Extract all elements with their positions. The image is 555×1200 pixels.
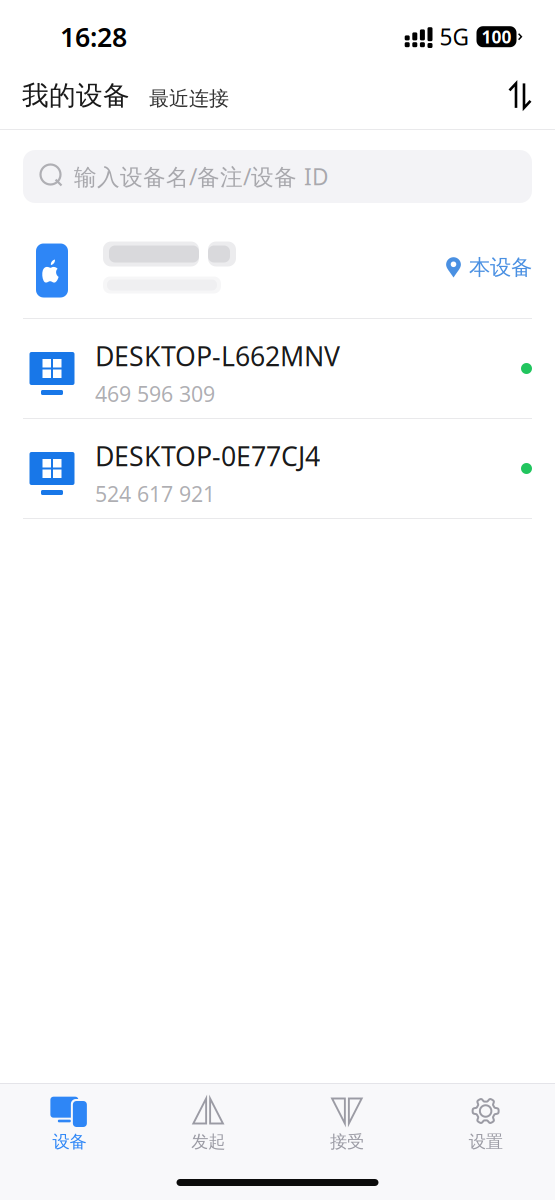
- staticText: 设备: [52, 1131, 86, 1152]
- staticText: 16:28: [60, 19, 127, 54]
- staticText: 100: [481, 25, 511, 48]
- button[interactable]: 发起: [139, 1084, 278, 1158]
- staticText: 我的设备: [22, 79, 130, 112]
- button[interactable]: 接受: [277, 1084, 416, 1158]
- staticText: 最近连接: [149, 86, 229, 111]
- staticText: 发起: [191, 1131, 225, 1152]
- button[interactable]: 输入设备名/备注/设备 ID: [23, 150, 532, 203]
- staticText: 本设备: [469, 254, 532, 281]
- staticText: DESKTOP-L662MNV: [95, 338, 340, 373]
- staticText: 设置: [469, 1131, 503, 1152]
- button[interactable]: DESKTOP-0E77CJ4: [0, 419, 555, 518]
- button[interactable]: Sort devices: [507, 81, 533, 112]
- staticText: 469 596 309: [95, 379, 215, 408]
- button[interactable]: 本设备: [0, 217, 555, 318]
- staticText: 接受: [330, 1131, 364, 1152]
- staticText: 5G: [439, 22, 469, 52]
- button[interactable]: 设置: [416, 1084, 555, 1158]
- staticText: 524 617 921: [95, 479, 215, 508]
- button[interactable]: DESKTOP-L662MNV: [0, 319, 555, 418]
- button[interactable]: 设备: [0, 1084, 139, 1158]
- staticText: DESKTOP-0E77CJ4: [95, 438, 320, 473]
- staticText: 输入设备名/备注/设备 ID: [74, 161, 329, 191]
